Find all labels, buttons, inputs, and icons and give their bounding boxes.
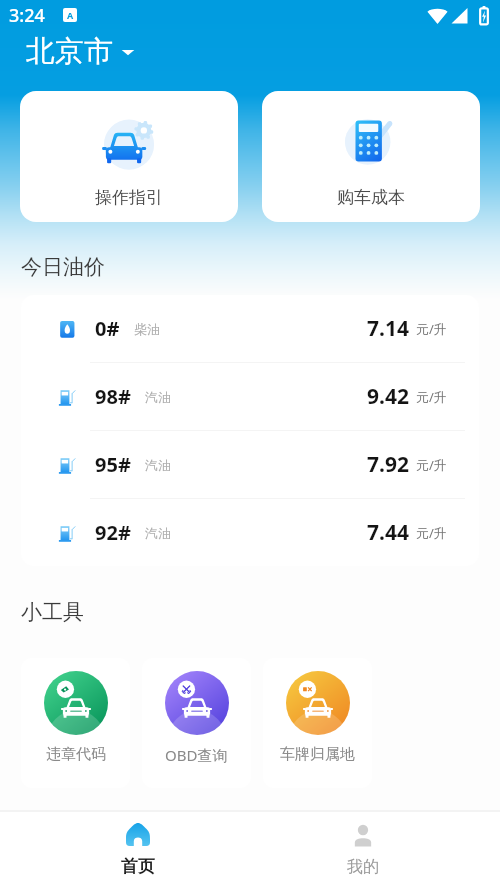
button[interactable]: 0# bbox=[21, 295, 479, 362]
staticText: 3:24 bbox=[9, 3, 45, 28]
staticText: 元/升 bbox=[416, 388, 447, 406]
staticText: 元/升 bbox=[416, 320, 447, 338]
staticText: 柴油 bbox=[134, 321, 160, 337]
staticText: 操作指引 bbox=[95, 187, 163, 208]
staticText: 汽油 bbox=[145, 389, 171, 405]
button[interactable]: 购车成本 bbox=[262, 91, 480, 222]
button[interactable]: 95# bbox=[21, 431, 479, 498]
staticText: 元/升 bbox=[416, 524, 447, 542]
staticText: 7.14 bbox=[367, 314, 409, 343]
staticText: 7.44 bbox=[367, 518, 409, 547]
staticText: 92# bbox=[95, 519, 131, 546]
button[interactable]: OBD查询 bbox=[142, 658, 251, 788]
staticText: 违章代码 bbox=[46, 745, 106, 764]
staticText: 购车成本 bbox=[337, 187, 405, 208]
staticText: OBD查询 bbox=[165, 745, 228, 765]
button[interactable]: 操作指引 bbox=[20, 91, 238, 222]
button[interactable]: 92# bbox=[21, 499, 479, 566]
staticText: 首页 bbox=[121, 856, 155, 877]
staticText: 元/升 bbox=[416, 456, 447, 474]
staticText: 小工具 bbox=[21, 599, 84, 625]
button[interactable]: 北京市 bbox=[24, 30, 137, 73]
staticText: 7.92 bbox=[367, 450, 409, 479]
staticText: 98# bbox=[95, 383, 131, 410]
button[interactable]: 车牌归属地 bbox=[263, 658, 372, 788]
staticText: 今日油价 bbox=[21, 254, 105, 280]
button[interactable]: 98# bbox=[21, 363, 479, 430]
staticText: 车牌归属地 bbox=[280, 745, 355, 764]
button[interactable]: 首页 bbox=[25, 812, 250, 888]
staticText: 汽油 bbox=[145, 457, 171, 473]
staticText: 0# bbox=[95, 315, 120, 342]
button[interactable]: 违章代码 bbox=[21, 658, 130, 788]
button[interactable]: 我的 bbox=[250, 812, 475, 888]
staticText: A bbox=[67, 9, 74, 21]
staticText: 我的 bbox=[347, 857, 379, 877]
staticText: 北京市 bbox=[26, 33, 113, 70]
staticText: 汽油 bbox=[145, 525, 171, 541]
staticText: 9.42 bbox=[367, 382, 409, 411]
staticText: 95# bbox=[95, 451, 131, 478]
